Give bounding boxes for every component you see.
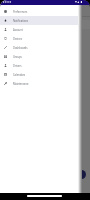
button[interactable]: Add [77, 170, 86, 179]
button[interactable]: Groups [0, 52, 78, 61]
button[interactable]: Notifications [0, 16, 78, 25]
staticText: Drivers [13, 64, 22, 68]
staticText: Devices [13, 37, 23, 41]
button[interactable]: Dashboards [0, 43, 78, 52]
staticText: Calendars [13, 73, 25, 77]
staticText: Maintenance [13, 82, 29, 86]
button[interactable]: Drivers [0, 61, 78, 70]
button[interactable]: Preferences [0, 7, 78, 16]
staticText: Groups [13, 55, 22, 59]
button[interactable]: Account [0, 25, 78, 34]
button[interactable]: Maintenance [0, 79, 78, 88]
staticText: Preferences [13, 10, 28, 14]
button[interactable]: Devices [0, 34, 78, 43]
staticText: Account [13, 28, 23, 32]
button[interactable]: Calendars [0, 70, 78, 79]
staticText: Notifications [13, 19, 29, 23]
staticText: Dashboards [13, 46, 28, 50]
